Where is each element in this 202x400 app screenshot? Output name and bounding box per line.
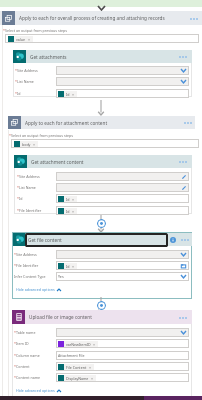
staticText: Yes	[58, 274, 64, 279]
staticText: List Name	[19, 185, 36, 190]
staticText: ×	[91, 376, 94, 381]
button[interactable]: More commands	[177, 52, 188, 61]
staticText: Infer Content Type	[14, 274, 46, 279]
staticText: Upload file or image content	[29, 314, 92, 320]
staticText: List Name	[17, 79, 34, 84]
staticText: ×	[72, 209, 75, 214]
staticText: Hide advanced options	[16, 388, 55, 393]
button[interactable]	[56, 183, 189, 192]
button[interactable]: Information about this action	[170, 237, 176, 243]
staticText: Table name	[16, 330, 36, 335]
staticText: Id	[19, 196, 23, 201]
staticText: ×	[72, 264, 75, 269]
button[interactable]: Id	[56, 89, 189, 98]
staticText: *	[17, 196, 19, 201]
staticText: Attachment File	[58, 353, 85, 358]
staticText: Id	[66, 209, 70, 214]
button[interactable]	[56, 328, 189, 337]
button[interactable]: value	[5, 34, 199, 43]
staticText: Content name	[16, 375, 41, 380]
staticText: *	[17, 208, 19, 213]
button[interactable]: DisplayName	[56, 373, 189, 382]
staticText: Get attachment content	[31, 159, 84, 165]
staticText: Select an output from previous steps	[11, 133, 73, 138]
button[interactable]: Attachment File	[56, 351, 189, 360]
staticText: Apply to each for attachment content	[25, 120, 108, 126]
staticText: *	[14, 353, 16, 358]
button[interactable]: Yes	[56, 272, 189, 281]
staticText: Content	[16, 364, 30, 369]
staticText: Site Address	[16, 252, 37, 257]
button[interactable]: More commands	[188, 14, 199, 23]
staticText: File Content	[66, 365, 87, 370]
staticText: ×	[72, 92, 75, 97]
staticText: *	[9, 133, 11, 138]
staticText: value	[16, 37, 26, 42]
staticText: *	[14, 341, 16, 346]
button[interactable]: Get attachments	[13, 50, 192, 63]
staticText: *	[17, 174, 19, 179]
button[interactable]: Upload file or image content	[12, 310, 192, 324]
button[interactable]	[56, 66, 189, 75]
staticText: Select an output from previous steps	[5, 28, 67, 33]
staticText: ×	[93, 342, 96, 347]
staticText: *	[15, 91, 17, 96]
button[interactable]	[56, 250, 189, 259]
staticText: File Identifier	[16, 263, 39, 268]
button[interactable]	[56, 77, 189, 86]
button[interactable]: Insert a new step	[97, 219, 106, 228]
button[interactable]: More commands	[182, 118, 193, 127]
staticText: *	[3, 28, 5, 33]
staticText: varNewItemID	[66, 342, 91, 347]
staticText: Id	[66, 264, 70, 269]
staticText: Hide advanced options	[16, 287, 55, 292]
button[interactable]: Hide advanced options	[16, 287, 61, 292]
staticText: Column name	[16, 353, 40, 358]
staticText: *	[14, 330, 16, 335]
button[interactable]: Id	[56, 261, 189, 270]
button[interactable]: Apply to each for attachment content	[8, 116, 195, 129]
button[interactable]: Id	[56, 194, 189, 203]
staticText: Site Address	[17, 68, 38, 73]
staticText: *	[15, 79, 17, 84]
button[interactable]	[13, 233, 192, 246]
staticText: Site Address	[19, 174, 40, 179]
staticText: DisplayName	[66, 376, 89, 381]
staticText: Item ID	[16, 341, 29, 346]
staticText: body	[22, 142, 31, 147]
staticText: Apply to each for overall process of cre…	[19, 15, 165, 21]
staticText: Id	[66, 92, 70, 97]
staticText: *	[17, 185, 19, 190]
staticText: *	[14, 375, 16, 380]
staticText: File Identifier	[19, 208, 42, 213]
button[interactable]: body	[11, 139, 199, 148]
button[interactable]: More commands	[177, 157, 188, 166]
staticText: Get file content	[28, 237, 62, 243]
button[interactable]	[56, 172, 189, 181]
staticText: *	[14, 263, 16, 268]
button[interactable]: Insert a new step	[97, 301, 106, 310]
button[interactable]: Apply to each for overall process of cre…	[0, 11, 202, 25]
staticText: Id	[66, 197, 70, 202]
staticText: ×	[28, 37, 31, 42]
staticText: *	[14, 364, 16, 369]
staticText: Id	[17, 91, 21, 96]
button[interactable]: Hide advanced options	[16, 388, 61, 393]
button[interactable]: More commands	[179, 235, 190, 244]
staticText: *	[15, 68, 17, 73]
staticText: *	[14, 252, 16, 257]
button[interactable]: Get attachment content	[14, 155, 192, 168]
staticText: ×	[33, 142, 36, 147]
staticText: ×	[89, 365, 92, 370]
button[interactable]: varNewItemID	[56, 339, 189, 348]
button[interactable]: More commands	[177, 313, 188, 322]
button[interactable]: File Content	[56, 362, 189, 371]
staticText: Get attachments	[30, 54, 67, 60]
button[interactable]: Id	[56, 206, 189, 215]
button[interactable]: Get file content	[25, 233, 168, 247]
staticText: ×	[72, 197, 75, 202]
